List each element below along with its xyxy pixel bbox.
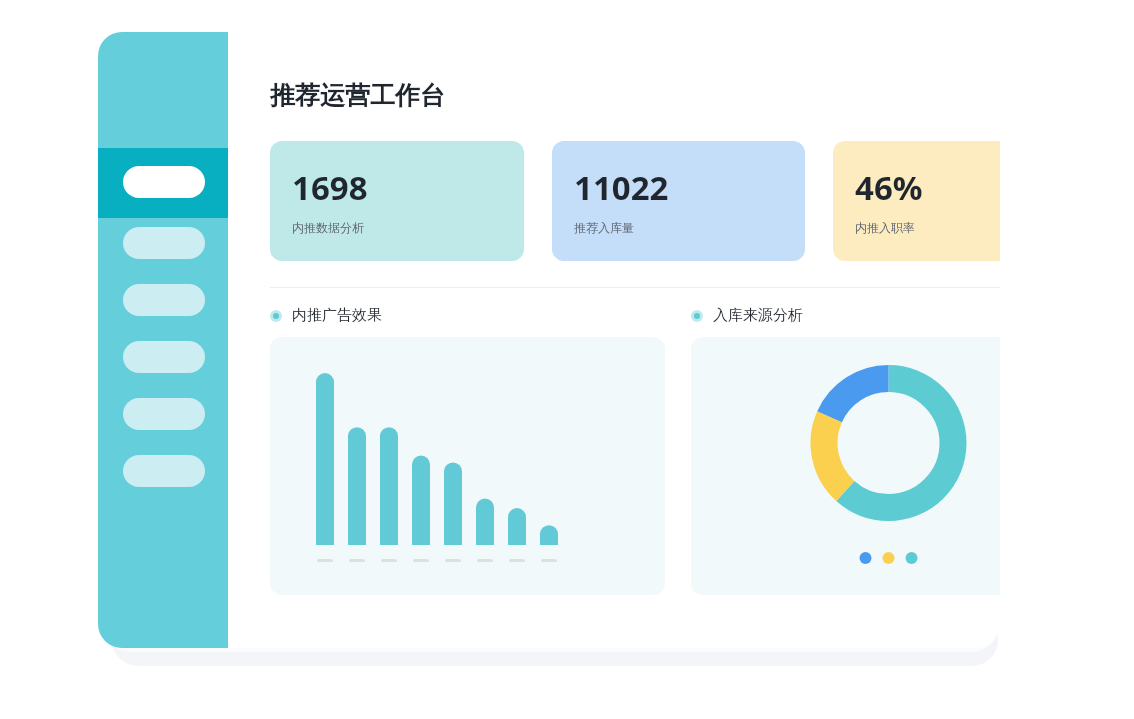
button[interactable]: Menu item 1 — [123, 166, 205, 198]
staticText: 推荐入库量 — [574, 220, 634, 235]
button[interactable]: 11022 — [552, 141, 805, 261]
staticText: 11022 — [574, 165, 669, 210]
staticText: 1698 — [292, 165, 368, 210]
button[interactable]: Menu item 3 — [123, 284, 205, 316]
button[interactable]: Menu item 2 — [123, 227, 205, 259]
button[interactable]: Menu item 5 — [123, 398, 205, 430]
button[interactable]: 1698 — [270, 141, 524, 261]
staticText: 内推入职率 — [855, 220, 915, 235]
staticText: 入库来源分析 — [713, 306, 803, 325]
staticText: 内推广告效果 — [292, 306, 382, 325]
button[interactable]: Menu item 6 — [123, 455, 205, 487]
staticText: 内推数据分析 — [292, 220, 364, 235]
staticText: 46% — [855, 165, 923, 210]
button[interactable]: 46% — [833, 141, 1000, 261]
staticText: 推荐运营工作台 — [270, 80, 445, 111]
button[interactable]: Menu item 4 — [123, 341, 205, 373]
